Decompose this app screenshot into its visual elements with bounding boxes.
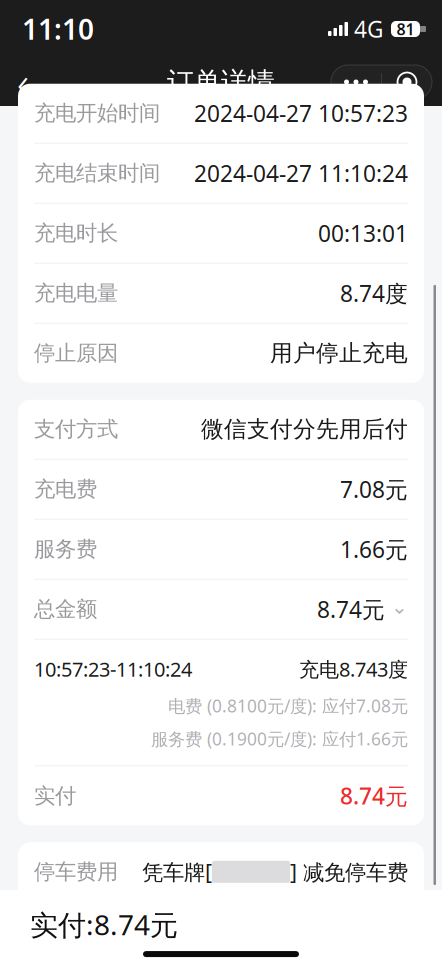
- staticText: 11:10: [22, 10, 94, 48]
- staticText: 实付: [34, 783, 76, 809]
- staticText: 微信支付分先用后付: [201, 415, 408, 443]
- staticText: 2024-04-27 10:57:23: [194, 98, 408, 128]
- staticText: 订单详情: [167, 66, 275, 98]
- staticText: 停车费用: [34, 859, 118, 885]
- staticText: 7.08元: [340, 474, 408, 504]
- staticText: 81: [396, 18, 414, 40]
- staticText: 8.74度: [340, 278, 408, 308]
- staticText: 4G: [354, 14, 384, 44]
- staticText: 凭车牌[: [142, 858, 212, 886]
- staticText: 充电电量: [34, 280, 118, 306]
- staticText: 1.66元: [340, 534, 408, 564]
- button[interactable]: 返回: [0, 60, 46, 104]
- staticText: 服务费: [34, 536, 97, 562]
- staticText: 00:13:01: [318, 218, 408, 248]
- staticText: 充电时长: [34, 220, 118, 246]
- staticText: 10:57:23-11:10:24: [34, 656, 192, 682]
- button[interactable]: 更多: [331, 65, 381, 99]
- staticText: 2024-04-27 11:10:24: [194, 158, 408, 188]
- staticText: ‹: [17, 52, 29, 112]
- staticText: 充电结束时间: [34, 160, 160, 186]
- staticText: ⌄: [391, 595, 408, 618]
- staticText: 电费 (0.8100元/度): 应付7.08元: [168, 694, 408, 717]
- staticText: 支付方式: [34, 416, 118, 442]
- staticText: 充电8.743度: [299, 656, 408, 682]
- button[interactable]: 总金额: [18, 580, 424, 639]
- staticText: 8.74元: [340, 781, 408, 811]
- staticText: ] 减免停车费: [290, 858, 408, 886]
- staticText: 总金额: [34, 596, 97, 622]
- button[interactable]: 关闭: [382, 65, 432, 99]
- staticText: 8.74元: [317, 594, 385, 624]
- staticText: 停止原因: [34, 340, 118, 366]
- staticText: 用户停止充电: [270, 339, 408, 367]
- staticText: 充电开始时间: [34, 100, 160, 126]
- staticText: 实付:8.74元: [30, 906, 178, 943]
- staticText: 充电费: [34, 476, 97, 502]
- staticText: 服务费 (0.1900元/度): 应付1.66元: [151, 727, 408, 750]
